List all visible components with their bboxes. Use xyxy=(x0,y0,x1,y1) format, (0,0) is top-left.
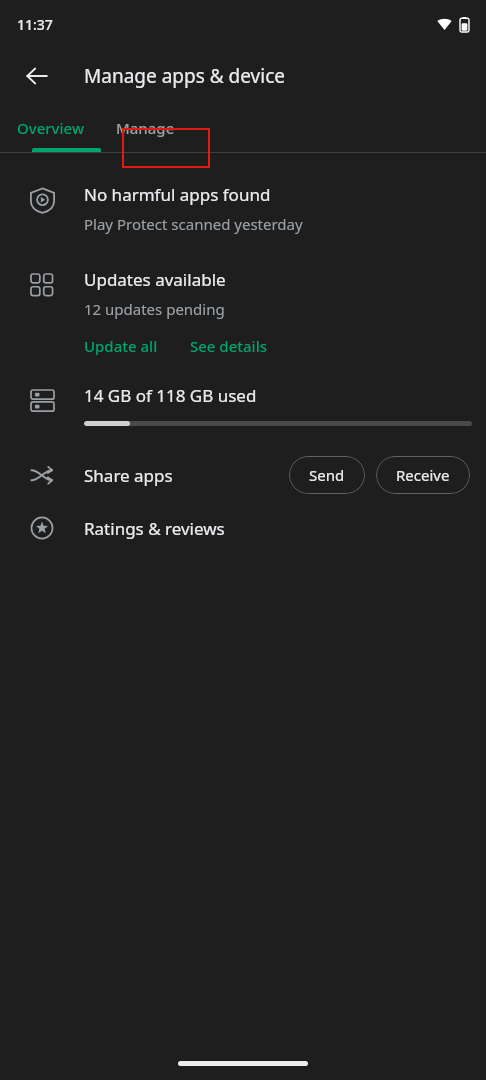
staticText: 12 updates pending xyxy=(84,299,225,319)
staticText: Updates available xyxy=(84,268,226,291)
staticText: Ratings & reviews xyxy=(84,517,225,540)
staticText: Send xyxy=(309,465,345,485)
button[interactable]: Back xyxy=(17,56,57,96)
button[interactable]: Overview xyxy=(0,104,101,152)
button[interactable]: Receive xyxy=(376,456,470,494)
button[interactable]: Send xyxy=(289,456,365,494)
button[interactable]: 14 GB of 118 GB used xyxy=(0,384,486,426)
staticText: Overview xyxy=(17,118,84,138)
staticText: 11:37 xyxy=(17,15,53,34)
staticText: Update all xyxy=(84,336,158,356)
staticText: Manage apps & device xyxy=(84,63,285,89)
staticText: 14 GB of 118 GB used xyxy=(84,384,257,407)
staticText: Manage xyxy=(116,118,175,138)
staticText: Receive xyxy=(396,465,450,485)
button[interactable]: Update all xyxy=(84,336,158,356)
button[interactable]: No harmful apps found xyxy=(0,183,486,234)
button[interactable]: Manage xyxy=(101,104,189,152)
button[interactable]: See details xyxy=(190,336,267,356)
button[interactable]: Ratings & reviews xyxy=(0,516,486,540)
staticText: No harmful apps found xyxy=(84,183,271,206)
staticText: Play Protect scanned yesterday xyxy=(84,214,303,234)
staticText: See details xyxy=(190,336,267,356)
staticText: Share apps xyxy=(84,464,173,487)
